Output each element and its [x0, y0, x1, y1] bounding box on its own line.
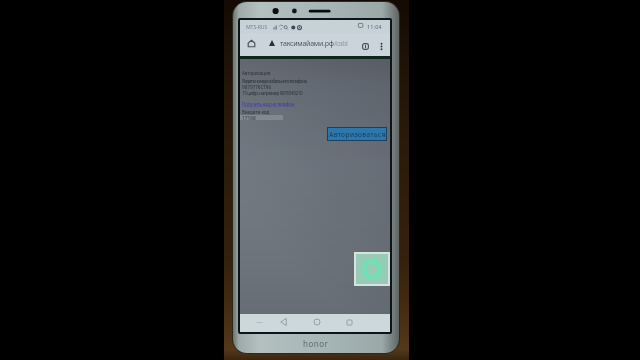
button[interactable]: Screen recorder	[356, 254, 388, 284]
staticText: Получить код на телефон	[242, 101, 295, 107]
staticText: MTS-RUS	[246, 23, 268, 30]
button[interactable]: 17168	[240, 115, 283, 120]
staticText: Введите код	[242, 109, 270, 115]
staticText: 11:04	[367, 23, 382, 31]
staticText: 15 цифр, например 9876543210	[242, 90, 303, 96]
staticText: honor	[303, 338, 329, 349]
staticText: Авторизация	[242, 70, 271, 76]
staticText: таксимайами.рф	[280, 39, 334, 49]
staticText: Ведите номер мобильного телефона	[242, 78, 307, 84]
staticText: Авторизоваться	[329, 130, 386, 139]
staticText: 9879776CT96	[242, 84, 272, 90]
button[interactable]: Home page	[244, 36, 258, 50]
staticText: /cabi	[334, 39, 348, 49]
button[interactable]: Recent apps	[342, 315, 356, 329]
button[interactable]: Back	[277, 315, 291, 329]
button[interactable]: Hide navigation bar	[253, 316, 265, 328]
button[interactable]: More options	[374, 39, 388, 53]
button[interactable]: Tabs	[358, 39, 372, 53]
button[interactable]: Home	[310, 315, 324, 329]
staticText: 17168	[242, 115, 256, 120]
button[interactable]: Авторизоваться	[328, 128, 386, 140]
button[interactable]: Получить код на телефон	[242, 101, 295, 107]
